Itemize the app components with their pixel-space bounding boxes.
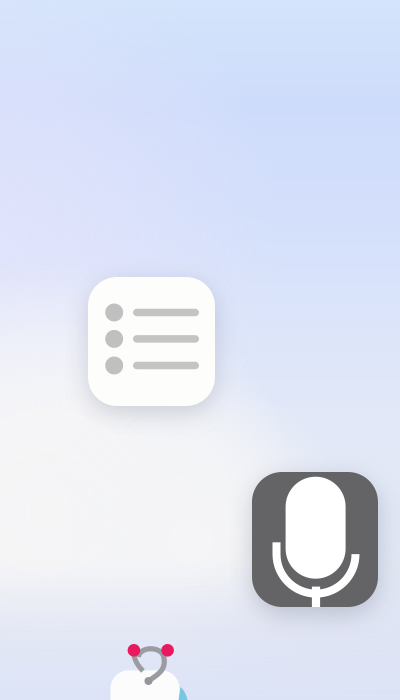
button[interactable]: Reminders [88, 277, 215, 406]
button[interactable]: Voice Memos [252, 472, 378, 607]
